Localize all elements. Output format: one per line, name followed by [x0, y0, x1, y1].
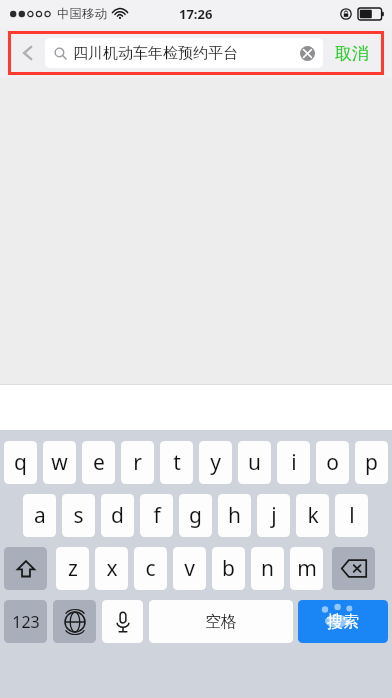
button[interactable]: h — [218, 494, 251, 537]
button[interactable]: q — [4, 441, 37, 484]
button[interactable]: 123 — [4, 600, 47, 643]
staticText: 123 — [12, 611, 40, 633]
button[interactable]: d — [101, 494, 134, 537]
button[interactable]: x — [95, 547, 128, 590]
button[interactable]: r — [121, 441, 154, 484]
staticText: r — [133, 448, 142, 477]
button[interactable]: b — [212, 547, 245, 590]
button[interactable]: t — [160, 441, 193, 484]
staticText: m — [297, 554, 317, 583]
staticText: a — [34, 501, 46, 530]
staticText: n — [261, 554, 274, 583]
button[interactable]: Back — [11, 34, 45, 72]
staticText: w — [51, 448, 68, 477]
staticText: y — [210, 448, 221, 477]
staticText: k — [307, 501, 319, 530]
staticText: f — [153, 501, 161, 530]
staticText: 搜索 — [327, 612, 359, 632]
button[interactable]: c — [134, 547, 167, 590]
button[interactable]: Switch keyboard language — [53, 600, 96, 643]
button[interactable]: f — [140, 494, 173, 537]
button[interactable]: y — [199, 441, 232, 484]
button[interactable]: g — [179, 494, 212, 537]
staticText: s — [73, 501, 84, 530]
button[interactable]: w — [43, 441, 76, 484]
button[interactable]: s — [62, 494, 95, 537]
button[interactable]: o — [316, 441, 349, 484]
staticText: x — [106, 554, 118, 583]
button[interactable]: 空格 — [149, 600, 293, 643]
staticText: h — [228, 501, 241, 530]
staticText: 中国移动 — [57, 6, 107, 22]
staticText: d — [111, 501, 124, 530]
button[interactable]: e — [82, 441, 115, 484]
staticText: e — [93, 448, 105, 477]
button[interactable]: p — [355, 441, 388, 484]
staticText: z — [68, 554, 78, 583]
button[interactable]: v — [173, 547, 206, 590]
button[interactable]: Shift — [4, 547, 47, 590]
staticText: o — [326, 448, 339, 477]
staticText: u — [248, 448, 261, 477]
button[interactable]: Voice input — [102, 600, 143, 643]
button[interactable]: j — [257, 494, 290, 537]
button[interactable]: l — [335, 494, 368, 537]
button[interactable]: i — [277, 441, 310, 484]
button[interactable]: m — [290, 547, 323, 590]
button[interactable]: k — [296, 494, 329, 537]
staticText: c — [145, 554, 156, 583]
button[interactable]: u — [238, 441, 271, 484]
staticText: v — [184, 554, 195, 583]
staticText: 空格 — [205, 612, 237, 632]
button[interactable]: n — [251, 547, 284, 590]
staticText: 取消 — [335, 43, 369, 64]
staticText: g — [189, 501, 202, 530]
button[interactable]: a — [23, 494, 56, 537]
staticText: l — [349, 501, 355, 530]
button[interactable]: Clear text — [294, 40, 320, 66]
button[interactable]: z — [56, 547, 89, 590]
staticText: q — [14, 448, 27, 477]
button[interactable]: 取消 — [323, 34, 381, 72]
staticText: 17:26 — [179, 5, 213, 23]
button[interactable]: 四川机动车年检预约平台 — [45, 38, 323, 68]
staticText: b — [222, 554, 235, 583]
staticText: t — [173, 448, 181, 477]
staticText: 四川机动车年检预约平台 — [73, 44, 294, 63]
button[interactable]: Backspace — [332, 547, 375, 590]
staticText: p — [365, 448, 378, 477]
button[interactable]: 搜索 — [298, 600, 388, 643]
staticText: j — [271, 501, 277, 530]
staticText: i — [291, 448, 297, 477]
